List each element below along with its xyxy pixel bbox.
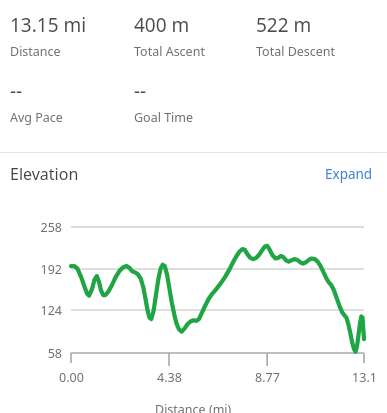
staticText: 8.77	[255, 369, 280, 386]
staticText: 192	[40, 261, 62, 278]
staticText: 13.1	[352, 369, 377, 386]
staticText: Goal Time	[134, 109, 194, 126]
staticText: 400 m	[134, 12, 190, 38]
staticText: Total Ascent	[134, 43, 205, 60]
staticText: Expand	[325, 165, 373, 183]
staticText: 4.38	[157, 369, 182, 386]
staticText: Avg Pace	[10, 109, 63, 126]
staticText: Elevation	[10, 163, 79, 185]
button[interactable]: Expand	[321, 159, 377, 189]
staticText: 58	[47, 345, 62, 362]
staticText: 0.00	[59, 369, 84, 386]
staticText: --	[134, 78, 147, 104]
staticText: --	[10, 78, 23, 104]
staticText: 522 m	[256, 12, 312, 38]
staticText: Total Descent	[256, 43, 336, 60]
staticText: 13.15 mi	[10, 12, 87, 38]
staticText: 258	[40, 219, 62, 236]
staticText: Distance (mi)	[155, 401, 232, 413]
staticText: 124	[40, 302, 62, 319]
staticText: Distance	[10, 43, 61, 60]
